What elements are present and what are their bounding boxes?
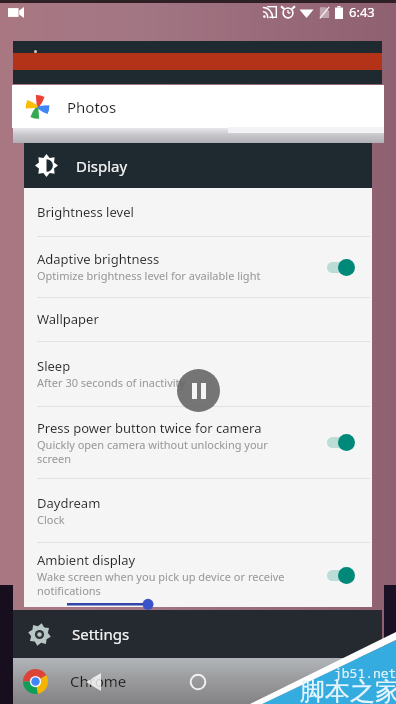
button[interactable]: Pause bbox=[177, 369, 220, 412]
staticText: Brightness level bbox=[37, 203, 134, 221]
staticText: jb51.net bbox=[334, 664, 396, 682]
staticText: Display bbox=[76, 156, 128, 176]
button[interactable]: Chrome bbox=[23, 658, 384, 704]
button[interactable] bbox=[13, 41, 382, 84]
button[interactable]: Home bbox=[176, 660, 220, 704]
staticText: Ambient display bbox=[37, 551, 136, 569]
button[interactable]: Settings bbox=[28, 610, 382, 658]
button[interactable]: Daydream bbox=[37, 478, 362, 542]
staticText: Quickly open camera without unlocking yo… bbox=[37, 437, 293, 466]
staticText: 6:43 bbox=[349, 3, 375, 21]
staticText: Chrome bbox=[70, 671, 127, 691]
button[interactable]: Sleep bbox=[37, 341, 362, 406]
staticText: Sleep bbox=[37, 357, 71, 375]
staticText: Clock bbox=[37, 512, 65, 527]
staticText: Wake screen when you pick up device or r… bbox=[37, 569, 293, 598]
staticText: Settings bbox=[72, 624, 130, 644]
staticText: Optimize brightness level for available … bbox=[37, 268, 261, 283]
staticText: 脚本之家 bbox=[300, 676, 396, 704]
button[interactable]: Photos bbox=[12, 85, 384, 128]
button[interactable]: Brightness level bbox=[37, 188, 362, 236]
button[interactable]: Ambient display bbox=[37, 542, 362, 607]
button[interactable]: Display bbox=[35, 143, 372, 188]
button[interactable]: Press power button twice for camera bbox=[37, 406, 362, 478]
staticText: Wallpaper bbox=[37, 310, 99, 328]
staticText: Daydream bbox=[37, 494, 101, 512]
other: Screen recording bbox=[8, 7, 24, 18]
staticText: Photos bbox=[67, 97, 117, 117]
staticText: Adaptive brightness bbox=[37, 250, 160, 268]
staticText: After 30 seconds of inactivity bbox=[37, 375, 186, 390]
staticText: Press power button twice for camera bbox=[37, 419, 262, 437]
button[interactable]: Wallpaper bbox=[37, 297, 362, 341]
button[interactable]: Adaptive brightness bbox=[37, 236, 362, 297]
button[interactable]: Back bbox=[71, 660, 115, 704]
